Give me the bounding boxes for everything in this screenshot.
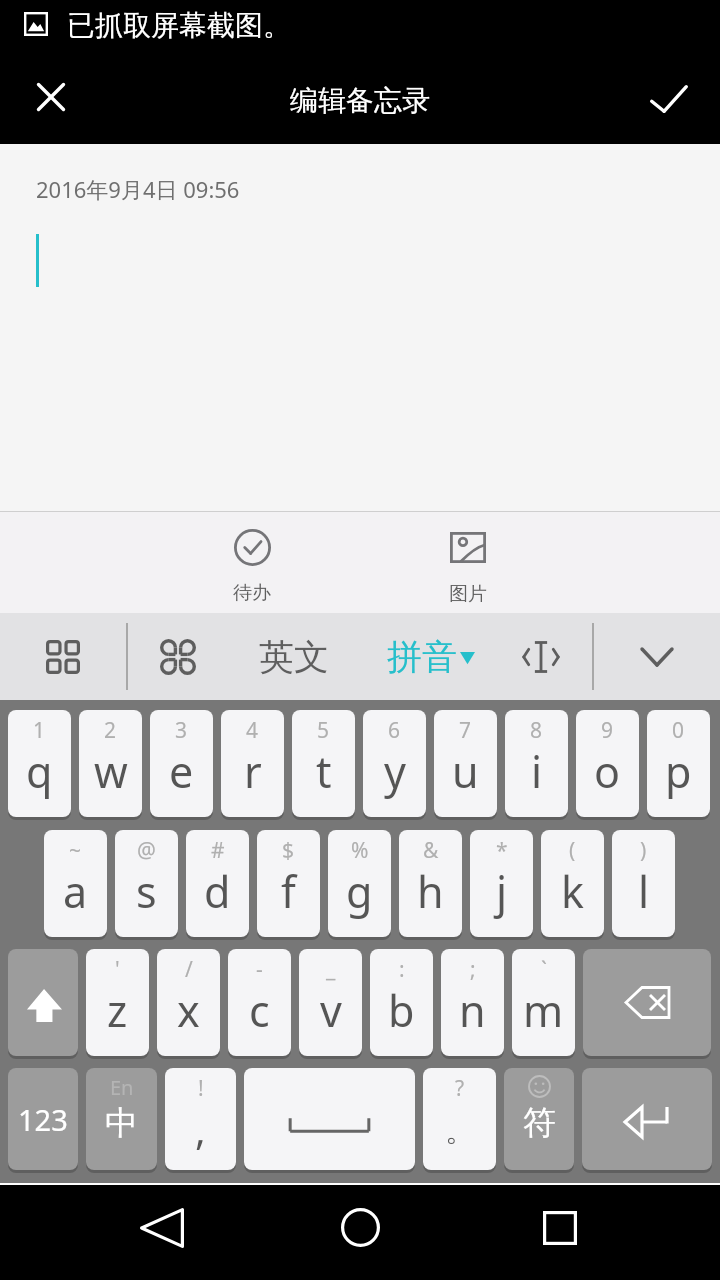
staticText: r [244,742,262,801]
button[interactable]: 图片 [408,512,528,613]
button[interactable]: ' [86,949,149,1056]
staticText: i [531,742,543,801]
staticText: t [316,742,332,801]
staticText: d [204,862,231,921]
staticText: 1 [33,716,46,745]
staticText: & [423,836,439,865]
button[interactable]: - [228,949,291,1056]
staticText: - [256,955,263,984]
button[interactable]: Move cursor [506,613,576,700]
staticText: u [452,742,479,801]
button[interactable]: 7 [434,710,497,817]
button[interactable]: 拼音 [371,613,491,700]
staticText: v [320,981,342,1040]
staticText: l [638,862,650,921]
button[interactable]: 待办 [192,512,312,613]
button[interactable]: _ [299,949,362,1056]
staticText: 待办 [233,581,271,605]
staticText: c [249,981,270,1040]
staticText: k [561,862,584,921]
staticText: ) [640,836,647,865]
staticText: ~ [69,836,82,865]
button[interactable]: $ [257,830,320,937]
staticText: * [496,836,508,865]
button[interactable]: 4 [221,710,284,817]
button[interactable]: % [328,830,391,937]
staticText: 3 [175,716,188,745]
staticText: $ [282,836,295,865]
button[interactable]: En [86,1068,157,1170]
staticText: # [211,836,225,865]
button[interactable]: 符 [504,1068,574,1170]
staticText: ? [455,1074,465,1103]
button[interactable]: Recents [526,1185,594,1280]
button[interactable]: ; [441,949,504,1056]
button[interactable]: Enter [582,1068,712,1170]
button[interactable]: ? [423,1068,496,1170]
staticText: / [185,955,193,984]
button[interactable]: Back [128,1185,196,1280]
staticText: j [496,862,508,921]
staticText: y [384,742,406,801]
button[interactable]: Emoji [143,613,213,700]
staticText: 7 [459,716,472,745]
staticText: 123 [18,1100,68,1139]
button[interactable]: * [470,830,533,937]
staticText: 图片 [449,582,487,606]
button[interactable]: 1 [8,710,71,817]
staticText: @ [137,836,156,865]
button[interactable]: ) [612,830,675,937]
button[interactable]: Keyboard layouts [28,613,98,700]
button[interactable]: 8 [505,710,568,817]
staticText: b [388,981,415,1040]
button[interactable]: 英文 [228,613,360,700]
staticText: ` [541,955,547,984]
staticText: s [136,862,157,921]
staticText: w [94,742,128,801]
button[interactable]: Space [244,1068,415,1170]
staticText: z [107,981,128,1040]
button[interactable]: : [370,949,433,1056]
staticText: h [417,862,444,921]
staticText: _ [326,955,336,984]
button[interactable]: Backspace [583,949,711,1056]
button[interactable]: 2 [79,710,142,817]
staticText: 。 [445,1112,475,1150]
button[interactable]: / [157,949,220,1056]
staticText: , [195,1102,206,1156]
button[interactable]: # [186,830,249,937]
button[interactable]: & [399,830,462,937]
button[interactable]: ! [165,1068,236,1170]
button[interactable]: Hide keyboard [622,613,692,700]
button[interactable]: Close [27,76,75,124]
staticText: 中 [105,1102,138,1144]
staticText: 5 [317,716,330,745]
button[interactable]: 123 [8,1068,78,1170]
staticText: ( [569,836,576,865]
button[interactable]: Home [326,1185,394,1280]
button[interactable]: 0 [647,710,710,817]
button[interactable]: @ [115,830,178,937]
button[interactable]: ` [512,949,575,1056]
staticText: e [169,742,194,801]
staticText: f [281,862,296,921]
staticText: m [523,981,564,1040]
button[interactable]: 9 [576,710,639,817]
staticText: q [26,742,53,801]
staticText: 6 [388,716,401,745]
button[interactable]: ( [541,830,604,937]
staticText: 4 [246,716,259,745]
staticText: ! [198,1074,204,1103]
button[interactable]: Done [643,74,695,126]
staticText: ' [115,955,120,984]
staticText: 2 [104,716,117,745]
button[interactable]: 6 [363,710,426,817]
staticText: 2016年9月4日 09:56 [36,174,240,204]
button[interactable]: Shift [8,949,78,1056]
button[interactable]: 5 [292,710,355,817]
staticText: 已抓取屏幕截图。 [67,8,291,43]
button[interactable]: 3 [150,710,213,817]
staticText: o [594,742,621,801]
button[interactable]: ~ [44,830,107,937]
staticText: 编辑备忘录 [290,83,430,118]
